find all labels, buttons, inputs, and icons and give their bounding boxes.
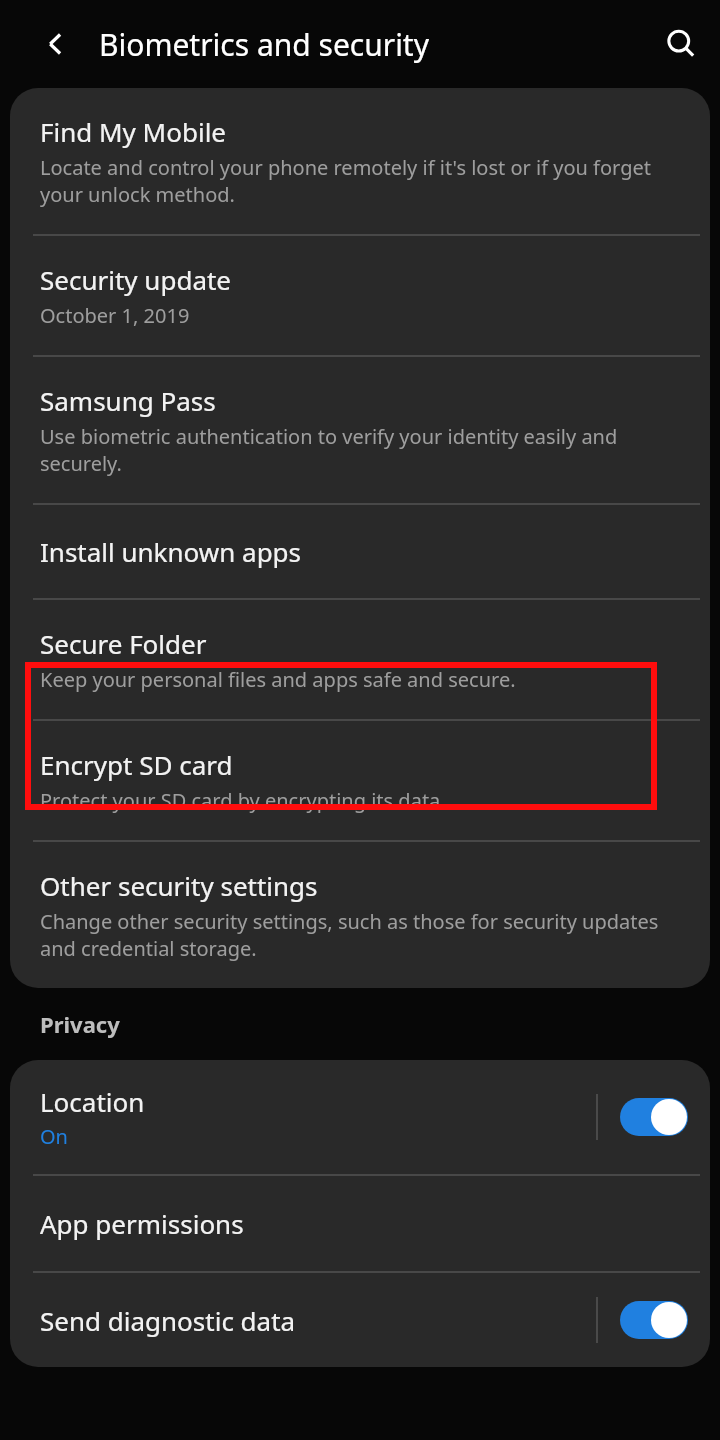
button[interactable]: Location on	[620, 1097, 688, 1137]
staticText: Find My Mobile	[40, 114, 227, 149]
staticText: Change other security settings, such as …	[40, 908, 696, 962]
button[interactable]: Location on	[620, 1300, 688, 1340]
staticText: Privacy	[40, 1009, 120, 1039]
button[interactable]: Install unknown apps	[10, 505, 710, 598]
button[interactable]: Search	[652, 15, 710, 73]
staticText: Locate and control your phone remotely i…	[40, 154, 696, 208]
staticText: Protect your SD card by encrypting its d…	[40, 787, 446, 814]
staticText: Samsung Pass	[40, 383, 216, 418]
button[interactable]: Encrypt SD card	[10, 721, 710, 840]
staticText: Security update	[40, 262, 232, 297]
button[interactable]: Send diagnostic data	[10, 1273, 710, 1367]
staticText: On	[40, 1123, 68, 1150]
staticText: October 1, 2019	[40, 302, 190, 329]
button[interactable]: Security update	[10, 236, 710, 355]
staticText: Use biometric authentication to verify y…	[40, 423, 696, 477]
staticText: App permissions	[40, 1206, 244, 1241]
button[interactable]: Samsung Pass	[10, 357, 710, 503]
staticText: Install unknown apps	[40, 534, 302, 569]
staticText: Location	[40, 1084, 145, 1119]
staticText: Biometrics and security	[99, 24, 652, 65]
button[interactable]: Location	[10, 1060, 710, 1174]
staticText: Keep your personal files and apps safe a…	[40, 666, 516, 693]
staticText: Encrypt SD card	[40, 747, 233, 782]
button[interactable]: Find My Mobile	[10, 88, 710, 234]
staticText: Send diagnostic data	[40, 1303, 296, 1338]
staticText: Secure Folder	[40, 626, 207, 661]
button[interactable]: App permissions	[10, 1176, 710, 1271]
staticText: Other security settings	[40, 868, 318, 903]
button[interactable]: Secure Folder	[10, 600, 710, 719]
button[interactable]: Navigate up	[27, 15, 85, 73]
button[interactable]: Other security settings	[10, 842, 710, 988]
